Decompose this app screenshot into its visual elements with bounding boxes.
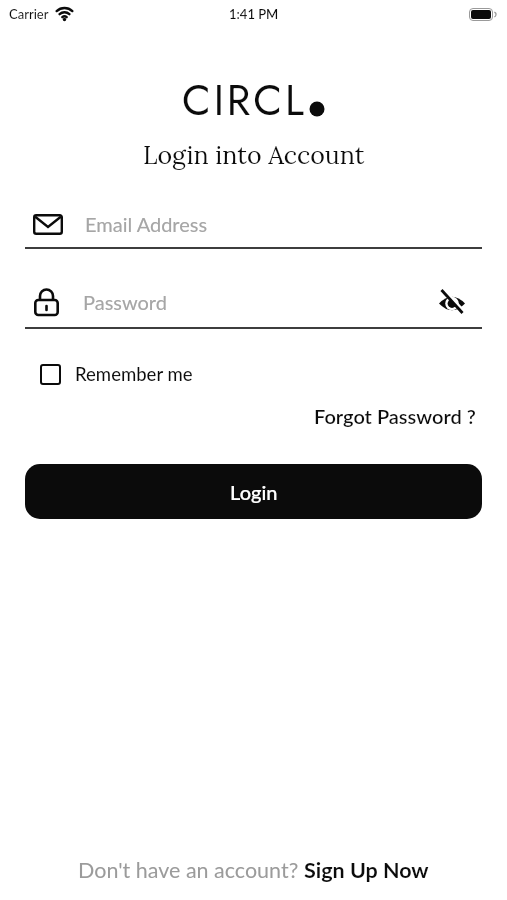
staticText: Carrier — [9, 6, 49, 22]
staticText: Password — [83, 290, 167, 314]
staticText: Sign Up Now — [304, 857, 429, 883]
staticText: 1:41 PM — [229, 6, 279, 22]
staticText: Don't have an account? — [78, 857, 304, 883]
button[interactable]: Forgot Password ? — [314, 404, 476, 428]
staticText: Remember me — [75, 363, 193, 385]
staticText: CIRCL — [182, 70, 307, 131]
button[interactable]: Don't have an account? — [0, 857, 507, 883]
staticText: Login into Account — [143, 139, 365, 171]
staticText: Email Address — [85, 212, 208, 236]
button[interactable] — [439, 289, 465, 315]
staticText: Login — [230, 480, 278, 504]
button[interactable]: Remember me — [25, 363, 482, 385]
button[interactable]: Login — [25, 464, 482, 519]
